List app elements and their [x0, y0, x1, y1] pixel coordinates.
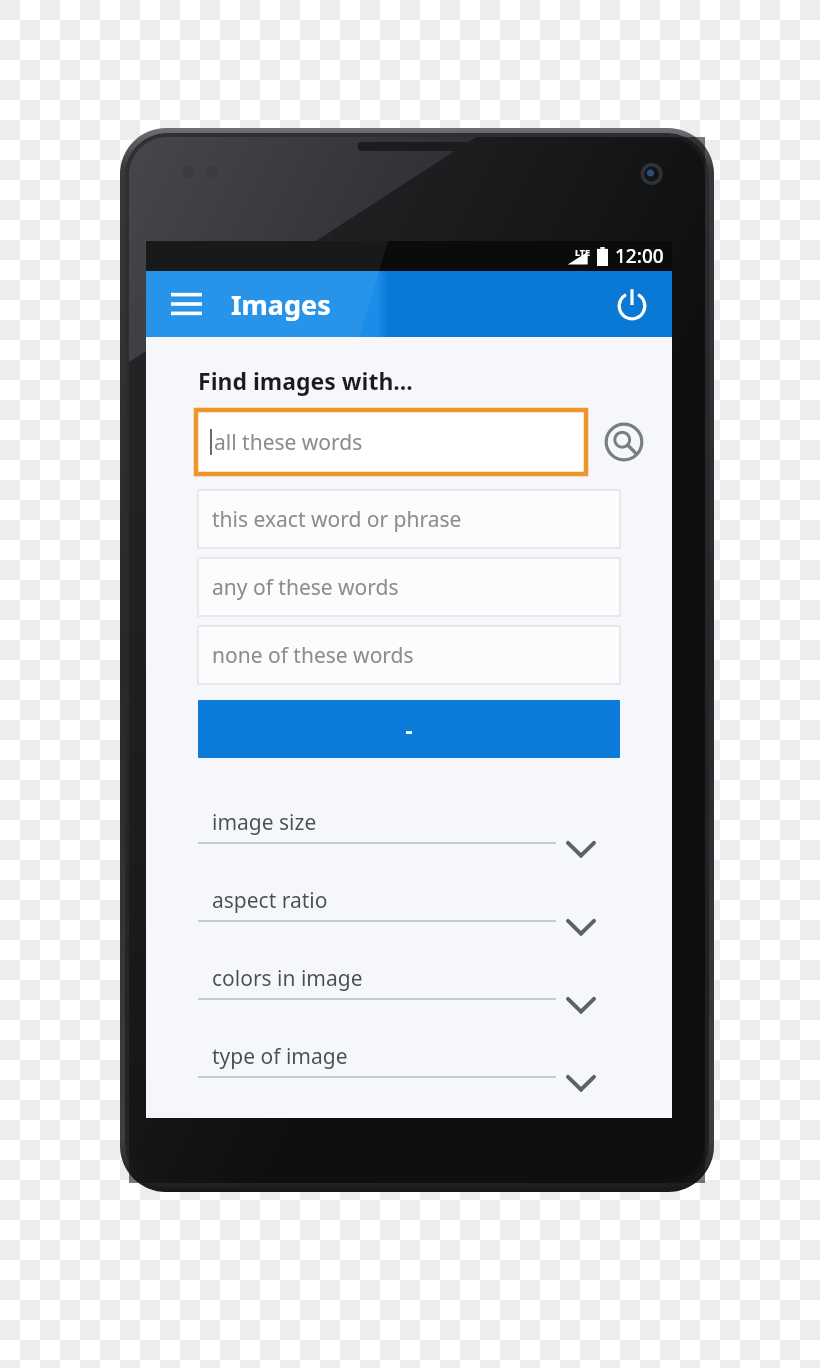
button[interactable]: colors in image	[146, 948, 672, 1026]
staticText: colors in image	[212, 964, 363, 993]
button[interactable]: image size	[146, 792, 672, 870]
button[interactable]: type of image	[146, 1026, 672, 1104]
staticText: type of image	[212, 1042, 348, 1071]
button[interactable]: -	[198, 700, 620, 758]
button[interactable]: Sign out	[608, 280, 656, 328]
button[interactable]: aspect ratio	[146, 870, 672, 948]
staticText: all these words	[214, 428, 363, 457]
staticText: none of these words	[212, 641, 414, 670]
staticText: this exact word or phrase	[212, 505, 462, 534]
staticText: Find images with...	[198, 365, 413, 396]
staticText: LTE	[575, 246, 591, 258]
button[interactable]: Open navigation menu	[166, 284, 206, 324]
staticText: 12:00	[615, 243, 664, 269]
button[interactable]: this exact word or phrase	[198, 490, 620, 548]
button[interactable]: any of these words	[198, 558, 620, 616]
button[interactable]: Search	[602, 420, 646, 464]
staticText: -	[405, 714, 413, 744]
staticText: image size	[212, 808, 317, 837]
staticText: Images	[231, 286, 331, 323]
staticText: any of these words	[212, 573, 399, 602]
button[interactable]: all these words	[196, 410, 586, 474]
staticText: aspect ratio	[212, 886, 328, 915]
button[interactable]: none of these words	[198, 626, 620, 684]
